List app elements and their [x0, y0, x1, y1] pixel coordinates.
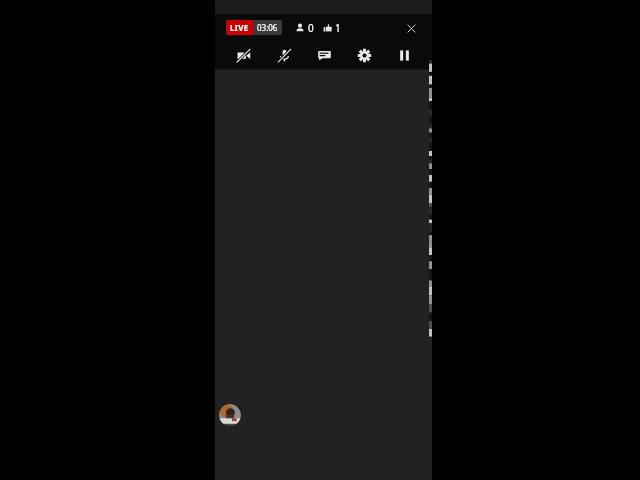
- button[interactable]: Participant thumbnail: [219, 404, 241, 426]
- staticText: 0: [308, 21, 314, 35]
- staticText: LIVE: [230, 22, 249, 33]
- button[interactable]: 1: [323, 21, 341, 35]
- button[interactable]: 0: [295, 21, 314, 35]
- button[interactable]: Pause: [384, 41, 424, 69]
- button[interactable]: Close: [398, 15, 424, 41]
- button[interactable]: LIVE: [226, 20, 282, 35]
- staticText: 03:06: [257, 22, 278, 33]
- button[interactable]: Turn camera off: [223, 41, 264, 69]
- button[interactable]: Settings: [344, 41, 384, 69]
- staticText: 1: [335, 21, 341, 35]
- button[interactable]: Chat: [304, 41, 344, 69]
- button[interactable]: Mute microphone: [264, 41, 304, 69]
